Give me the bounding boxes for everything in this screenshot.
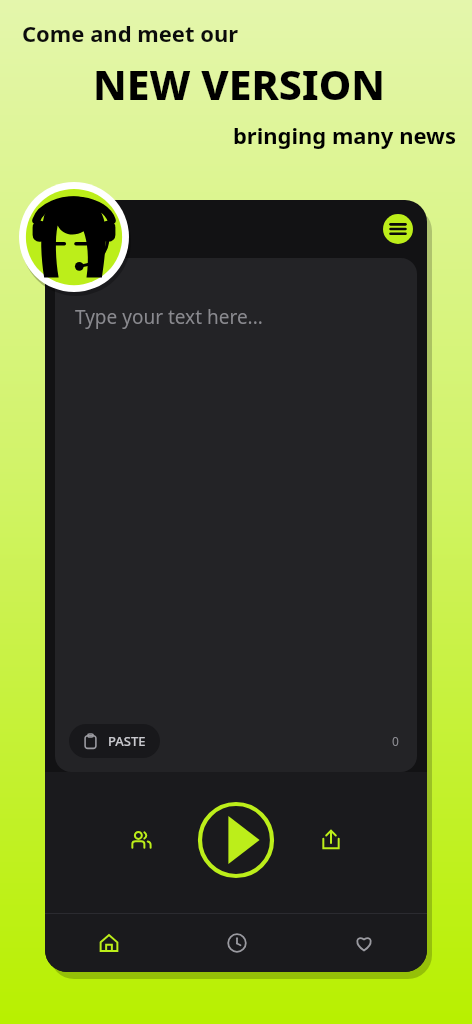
button[interactable]: PASTE xyxy=(69,724,160,758)
staticText: NEW VERSION xyxy=(22,56,456,112)
button[interactable]: Home xyxy=(45,914,173,972)
button[interactable]: Share xyxy=(308,817,354,863)
button[interactable]: Contacts xyxy=(118,817,164,863)
staticText: Come and meet our xyxy=(22,18,239,48)
button[interactable]: Menu xyxy=(383,214,413,244)
staticText: 0 xyxy=(392,733,399,749)
staticText: Type your text here... xyxy=(75,304,263,330)
button[interactable]: Type your text here... xyxy=(55,258,417,772)
button[interactable]: History xyxy=(173,914,300,972)
button[interactable]: Favourites xyxy=(300,914,427,972)
staticText: bringing many news xyxy=(22,120,456,150)
button[interactable]: Assistant avatar xyxy=(17,180,131,294)
button[interactable]: Play xyxy=(196,800,276,880)
staticText: PASTE xyxy=(108,732,146,750)
